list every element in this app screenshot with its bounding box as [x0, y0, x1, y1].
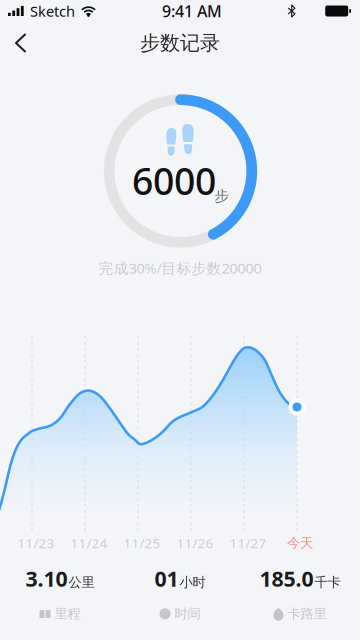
staticText: 步数记录: [140, 31, 220, 55]
staticText: Sketch: [30, 1, 75, 21]
staticText: 3.10: [25, 564, 67, 593]
staticText: 完成30%/目标步数20000: [98, 258, 261, 278]
staticText: 步: [214, 187, 229, 205]
button[interactable]: Back: [0, 23, 43, 62]
staticText: 公里: [68, 574, 94, 590]
staticText: 千卡: [314, 574, 340, 590]
staticText: 里程: [54, 606, 80, 622]
staticText: 11/26: [176, 534, 213, 552]
staticText: 时间: [174, 606, 200, 622]
staticText: 01: [154, 564, 178, 593]
staticText: 11/23: [17, 534, 54, 552]
staticText: 6000: [132, 156, 216, 205]
staticText: 185.0: [259, 564, 313, 593]
staticText: 11/27: [229, 534, 266, 552]
staticText: 小时: [179, 574, 205, 590]
staticText: 11/24: [70, 534, 107, 552]
staticText: 9:41 AM: [162, 0, 222, 22]
staticText: 今天: [287, 535, 313, 551]
staticText: 卡路里: [287, 606, 326, 622]
staticText: 11/25: [123, 534, 160, 552]
